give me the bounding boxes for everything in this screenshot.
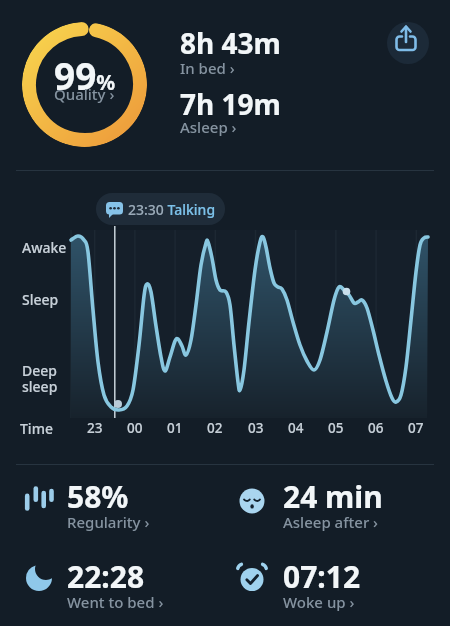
button[interactable]: 22:28 xyxy=(22,552,212,610)
staticText: Sleep xyxy=(22,290,59,309)
button[interactable]: In bed › xyxy=(180,58,235,78)
staticText: 24 min xyxy=(283,476,383,517)
staticText: 58% xyxy=(67,476,129,517)
staticText: Awake xyxy=(22,238,67,257)
staticText: sleep xyxy=(22,377,58,396)
staticText: 02 xyxy=(207,419,223,437)
button[interactable]: 23:30 Talking xyxy=(96,193,225,225)
staticText: 00 xyxy=(127,419,143,437)
staticText: Regularity › xyxy=(67,512,150,532)
staticText: 01 xyxy=(167,419,183,437)
button[interactable]: 07:12 xyxy=(235,552,425,610)
staticText: Quality › xyxy=(54,84,115,104)
staticText: 07:12 xyxy=(283,556,361,597)
staticText: 22:28 xyxy=(67,556,145,597)
staticText: 03 xyxy=(248,419,264,437)
staticText: 23 xyxy=(87,419,103,437)
staticText: Asleep after › xyxy=(283,512,379,532)
button[interactable]: 24 min xyxy=(235,472,425,530)
button[interactable]: Asleep › xyxy=(180,117,237,137)
staticText: Deep xyxy=(22,361,57,380)
button[interactable]: 99% xyxy=(22,22,147,147)
staticText: 05 xyxy=(328,419,344,437)
staticText: 23:30 Talking xyxy=(128,200,216,219)
staticText: Time xyxy=(20,419,53,438)
button[interactable]: 58% xyxy=(22,472,212,530)
staticText: 99% xyxy=(54,50,116,100)
staticText: 07 xyxy=(408,419,424,437)
button[interactable]: 7h 19m xyxy=(180,85,281,123)
staticText: Woke up › xyxy=(283,592,355,612)
staticText: Went to bed › xyxy=(67,592,164,612)
staticText: 06 xyxy=(368,419,384,437)
staticText: 04 xyxy=(288,419,304,437)
button[interactable] xyxy=(387,22,429,64)
button[interactable]: 8h 43m xyxy=(180,24,281,62)
